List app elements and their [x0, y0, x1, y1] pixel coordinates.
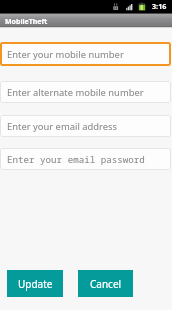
staticText: 3:16 [152, 1, 167, 11]
button[interactable]: Enter your mobile number [0, 42, 171, 66]
staticText: MobileTheft [5, 17, 48, 27]
button[interactable]: Enter your email address [0, 115, 171, 137]
staticText: Enter alternate mobile number [7, 86, 144, 99]
button[interactable]: Cancel [78, 270, 133, 297]
staticText: Update [18, 277, 53, 291]
button[interactable]: Enter your email password [0, 148, 171, 170]
staticText: Enter your email password [7, 153, 145, 166]
staticText: Enter your email address [7, 120, 118, 133]
staticText: Cancel [90, 277, 122, 291]
button[interactable]: Enter alternate mobile number [0, 81, 171, 103]
staticText: Enter your mobile number [7, 48, 124, 61]
button[interactable]: Update [7, 270, 63, 297]
